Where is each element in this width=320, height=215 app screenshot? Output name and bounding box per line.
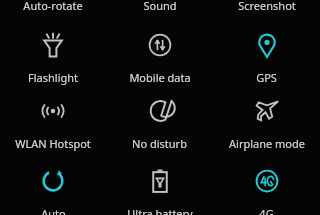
other: Mobile data — [147, 32, 173, 58]
staticText: Sound — [143, 0, 177, 13]
button[interactable]: No disturb — [106, 92, 213, 156]
staticText: No disturb — [132, 136, 187, 151]
other: GPS — [254, 32, 280, 58]
button[interactable]: 4G — [213, 162, 320, 215]
staticText: Airplane mode — [229, 136, 305, 151]
other: Ultra battery — [147, 168, 173, 194]
staticText: Flashlight — [28, 70, 78, 85]
staticText: Ultra battery — [127, 206, 193, 215]
other: Flashlight — [40, 32, 66, 58]
other: No disturb — [147, 98, 173, 124]
button[interactable]: Screenshot — [213, 0, 320, 18]
button[interactable]: Flashlight — [0, 26, 106, 90]
staticText: Auto — [41, 206, 66, 215]
other: 4G — [254, 168, 280, 194]
staticText: GPS — [256, 70, 277, 85]
staticText: Auto-rotate — [23, 0, 83, 13]
button[interactable]: Airplane mode — [213, 92, 320, 156]
button[interactable]: GPS — [213, 26, 320, 90]
staticText: Mobile data — [129, 70, 191, 85]
staticText: Screenshot — [238, 0, 296, 13]
button[interactable]: WLAN Hotspot — [0, 92, 106, 156]
button[interactable]: Mobile data — [106, 26, 213, 90]
button[interactable]: Sound — [106, 0, 213, 18]
other: Auto — [40, 168, 66, 194]
other: Airplane mode — [254, 98, 280, 124]
button[interactable]: Auto-rotate — [0, 0, 106, 18]
staticText: WLAN Hotspot — [15, 136, 91, 151]
other: WLAN Hotspot — [40, 98, 66, 124]
button[interactable]: Auto — [0, 162, 106, 215]
button[interactable]: Ultra battery — [106, 162, 213, 215]
staticText: 4G — [259, 206, 274, 215]
